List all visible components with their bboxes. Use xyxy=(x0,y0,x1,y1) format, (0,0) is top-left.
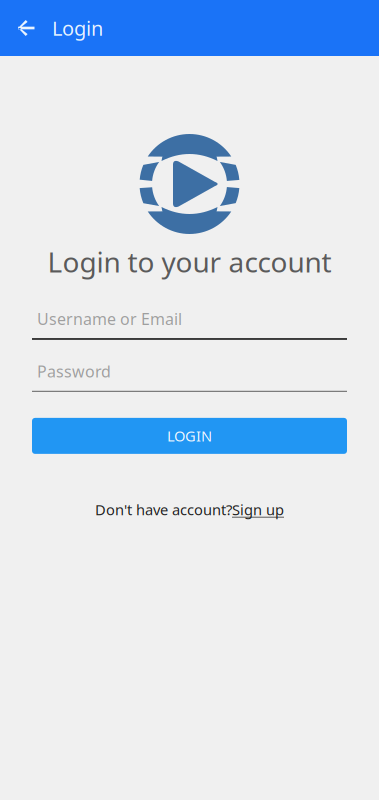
staticText: LOGIN xyxy=(167,426,212,446)
button[interactable]: LOGIN xyxy=(32,418,347,454)
button[interactable]: Sign up xyxy=(232,500,284,519)
staticText: Login xyxy=(52,15,103,41)
staticText: Password xyxy=(37,361,111,382)
staticText: Login to your account xyxy=(47,243,331,280)
button[interactable]: Back xyxy=(0,0,52,56)
staticText: Username or Email xyxy=(37,308,182,329)
staticText: Sign up xyxy=(232,500,284,519)
staticText: Don't have account? xyxy=(95,500,232,519)
